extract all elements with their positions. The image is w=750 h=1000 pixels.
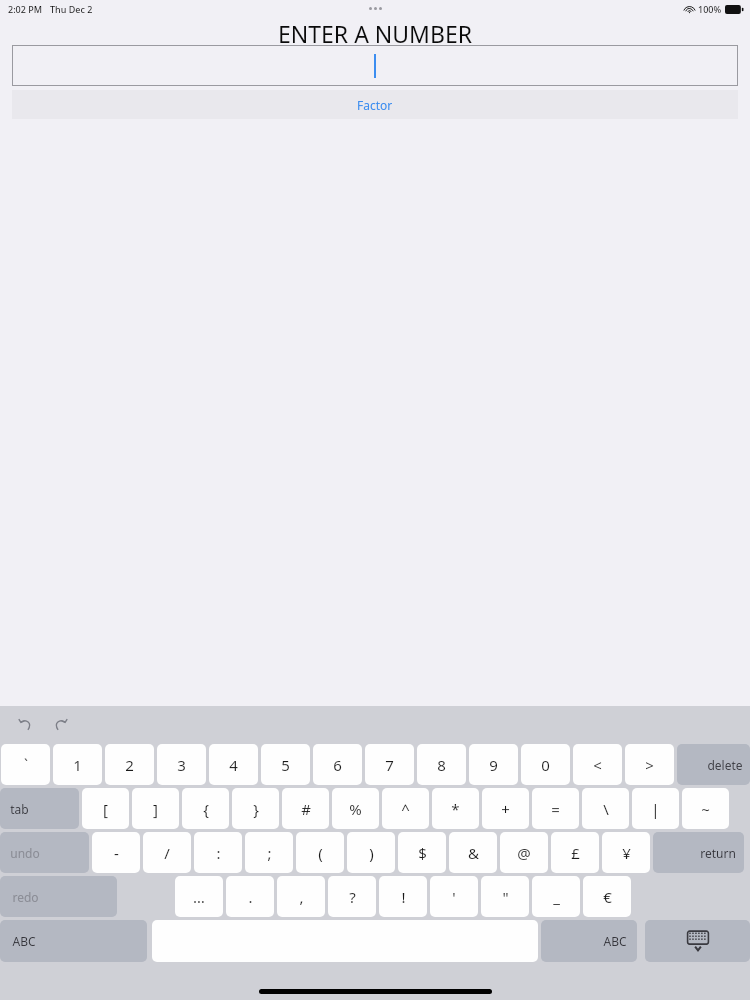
button[interactable]: 1: [53, 744, 102, 785]
button[interactable]: [12, 45, 738, 86]
staticText: {: [203, 799, 209, 819]
staticText: *: [451, 799, 460, 819]
staticText: £: [571, 843, 580, 863]
staticText: ,: [299, 887, 304, 907]
button[interactable]: €: [583, 876, 631, 917]
staticText: Factor: [357, 97, 393, 113]
button[interactable]: #: [282, 788, 329, 829]
button[interactable]: 6: [313, 744, 362, 785]
button[interactable]: <: [573, 744, 622, 785]
staticText: /: [164, 843, 170, 863]
button[interactable]: ABC: [541, 920, 637, 962]
button[interactable]: !: [379, 876, 427, 917]
button[interactable]: `: [1, 744, 50, 785]
button[interactable]: ): [347, 832, 395, 873]
staticText: 9: [489, 755, 498, 775]
staticText: ;: [267, 843, 272, 863]
button[interactable]: :: [194, 832, 242, 873]
button[interactable]: Redo: [48, 713, 72, 737]
button[interactable]: {: [182, 788, 229, 829]
staticText: undo: [10, 845, 40, 861]
button[interactable]: ~: [682, 788, 729, 829]
button[interactable]: 7: [365, 744, 414, 785]
button[interactable]: ABC: [0, 920, 147, 962]
button[interactable]: 9: [469, 744, 518, 785]
staticText: [: [103, 799, 108, 819]
staticText: $: [418, 843, 427, 863]
button[interactable]: =: [532, 788, 579, 829]
button[interactable]: ;: [245, 832, 293, 873]
staticText: |: [651, 799, 660, 819]
button[interactable]: ": [481, 876, 529, 917]
button[interactable]: \: [582, 788, 629, 829]
button[interactable]: |: [632, 788, 679, 829]
button[interactable]: …: [175, 876, 223, 917]
staticText: (: [318, 843, 323, 863]
staticText: :: [216, 843, 221, 863]
button[interactable]: Factor: [12, 90, 738, 119]
button[interactable]: 2: [105, 744, 154, 785]
button[interactable]: ?: [328, 876, 376, 917]
staticText: tab: [10, 801, 29, 817]
button[interactable]: 5: [261, 744, 310, 785]
button[interactable]: @: [500, 832, 548, 873]
button[interactable]: return: [653, 832, 744, 873]
button[interactable]: (: [296, 832, 344, 873]
button[interactable]: 8: [417, 744, 466, 785]
button[interactable]: 3: [157, 744, 206, 785]
staticText: ": [502, 887, 509, 907]
button[interactable]: ': [430, 876, 478, 917]
staticText: redo: [12, 889, 39, 905]
staticText: 7: [385, 755, 394, 775]
staticText: }: [253, 799, 259, 819]
button[interactable]: ¥: [602, 832, 650, 873]
button[interactable]: redo: [0, 876, 117, 917]
staticText: 1: [73, 755, 82, 775]
staticText: !: [401, 887, 406, 907]
staticText: ): [369, 843, 374, 863]
staticText: 2: [125, 755, 134, 775]
button[interactable]: /: [143, 832, 191, 873]
staticText: ]: [153, 799, 158, 819]
staticText: 8: [437, 755, 446, 775]
button[interactable]: Hide keyboard: [645, 920, 750, 962]
button[interactable]: %: [332, 788, 379, 829]
staticText: `: [24, 755, 28, 774]
staticText: ^: [401, 799, 410, 819]
staticText: ABC: [12, 933, 36, 949]
staticText: €: [603, 887, 612, 907]
button[interactable]: *: [432, 788, 479, 829]
button[interactable]: 4: [209, 744, 258, 785]
staticText: ?: [349, 887, 356, 907]
button[interactable]: -: [92, 832, 140, 873]
button[interactable]: &: [449, 832, 497, 873]
button[interactable]: _: [532, 876, 580, 917]
button[interactable]: delete: [677, 744, 750, 785]
button[interactable]: >: [625, 744, 674, 785]
staticText: return: [700, 845, 736, 861]
staticText: 3: [177, 755, 186, 775]
staticText: @: [517, 843, 531, 863]
button[interactable]: Undo: [14, 713, 38, 737]
button[interactable]: [: [82, 788, 129, 829]
button[interactable]: }: [232, 788, 279, 829]
staticText: ABC: [603, 933, 627, 949]
button[interactable]: 0: [521, 744, 570, 785]
button[interactable]: .: [226, 876, 274, 917]
staticText: =: [551, 799, 560, 819]
button[interactable]: £: [551, 832, 599, 873]
staticText: &: [468, 843, 479, 863]
staticText: 4: [229, 755, 238, 775]
button[interactable]: ]: [132, 788, 179, 829]
button[interactable]: $: [398, 832, 446, 873]
button[interactable]: tab: [0, 788, 79, 829]
button[interactable]: ,: [277, 876, 325, 917]
button[interactable]: +: [482, 788, 529, 829]
staticText: 5: [281, 755, 290, 775]
button[interactable]: ^: [382, 788, 429, 829]
staticText: >: [645, 755, 654, 775]
staticText: -: [114, 843, 119, 863]
staticText: <: [593, 755, 602, 775]
button[interactable]: undo: [0, 832, 89, 873]
